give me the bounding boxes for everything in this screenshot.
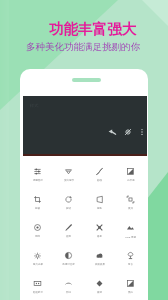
button[interactable]: 白平衡 — [115, 162, 146, 190]
staticText: 功能丰富强大 — [49, 20, 136, 38]
button[interactable]: 怀旧 — [53, 274, 84, 300]
staticText: 斑驳 — [97, 291, 102, 294]
staticText: 调整图片 — [33, 179, 43, 182]
button[interactable]: 斑驳 — [84, 274, 115, 300]
staticText: 色调对比度 — [62, 263, 75, 266]
staticText: 魅力光晕 — [33, 263, 43, 266]
staticText: 复古 — [128, 263, 133, 266]
button[interactable]: 剪裁 — [22, 190, 53, 218]
staticText: 画笔 — [66, 235, 71, 238]
staticText: 粗粒胶片 — [33, 291, 43, 294]
button[interactable]: 视角 — [84, 190, 115, 218]
button[interactable]: 色调对比度 — [53, 246, 84, 274]
staticText: 白平衡 — [127, 179, 135, 182]
button[interactable]: 画笔 — [53, 218, 84, 246]
button[interactable]: 局部 — [22, 218, 53, 246]
button[interactable]: 复古 — [115, 246, 146, 274]
button[interactable]: 修复 — [84, 218, 115, 246]
staticText: 黑白 — [128, 291, 133, 294]
staticText: 戏剧效果 — [95, 263, 105, 266]
staticText: HDR 景观 — [125, 235, 136, 238]
staticText: 修复 — [97, 235, 102, 238]
button[interactable]: 粗粒胶片 — [22, 274, 53, 300]
staticText: 突出细节 — [64, 179, 74, 182]
staticText: 旋转 — [66, 207, 71, 210]
staticText: 剪裁 — [35, 207, 40, 210]
button[interactable]: 旋转 — [53, 190, 84, 218]
staticText: 局部 — [35, 235, 40, 238]
button[interactable]: Undo — [108, 128, 116, 136]
button[interactable]: HDR 景观 — [115, 218, 146, 246]
button[interactable]: 展开 — [115, 190, 146, 218]
staticText: 曲线 — [97, 179, 102, 182]
button[interactable]: Compare — [124, 128, 132, 136]
button[interactable]: 戏剧效果 — [84, 246, 115, 274]
button[interactable]: 调整图片 — [22, 162, 53, 190]
button[interactable]: More options — [138, 128, 146, 136]
button[interactable]: 黑白 — [115, 274, 146, 300]
button[interactable]: 魅力光晕 — [22, 246, 53, 274]
staticText: 视角 — [97, 207, 102, 210]
staticText: 怀旧 — [66, 291, 71, 294]
button[interactable]: 突出细节 — [53, 162, 84, 190]
staticText: 多种美化功能满足挑剔的你 — [26, 41, 140, 53]
button[interactable]: 曲线 — [84, 162, 115, 190]
staticText: 展开 — [128, 207, 133, 210]
